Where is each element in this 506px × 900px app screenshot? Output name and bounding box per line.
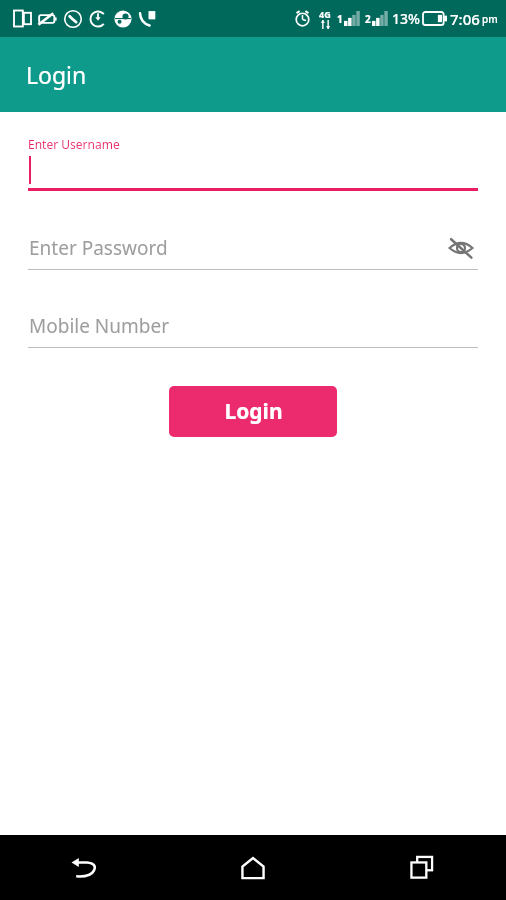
staticText: 1 bbox=[337, 12, 343, 26]
staticText: 13% bbox=[392, 9, 420, 28]
button[interactable]: Toggle password visibility bbox=[444, 231, 478, 265]
staticText: 7:06 bbox=[450, 9, 480, 29]
button[interactable]: Login bbox=[169, 386, 337, 437]
staticText: Login bbox=[26, 59, 87, 90]
staticText: Login bbox=[224, 397, 283, 426]
button[interactable]: Mobile Number bbox=[28, 309, 478, 348]
staticText: 4G bbox=[319, 8, 331, 20]
button[interactable]: Home bbox=[168, 835, 337, 900]
staticText: pm bbox=[482, 12, 498, 26]
button[interactable]: Enter Password bbox=[28, 231, 478, 270]
staticText: Enter Username bbox=[28, 136, 120, 152]
button[interactable]: Recent apps bbox=[337, 835, 506, 900]
staticText: Enter Password bbox=[29, 235, 168, 261]
staticText: Mobile Number bbox=[29, 313, 170, 339]
staticText: 2 bbox=[365, 12, 371, 26]
button[interactable]: Enter Username bbox=[28, 136, 478, 191]
button[interactable]: Back bbox=[0, 835, 168, 900]
